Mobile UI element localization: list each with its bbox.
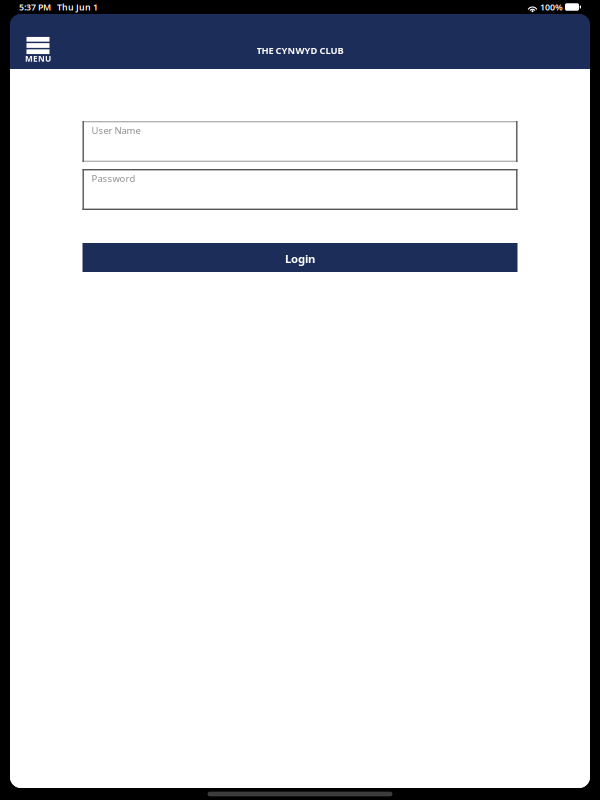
button[interactable]: User Name xyxy=(82,121,517,162)
staticText: MENU xyxy=(25,53,51,64)
staticText: Password xyxy=(91,172,135,185)
staticText: THE CYNWYD CLUB xyxy=(256,44,343,57)
staticText: 5:37 PM xyxy=(19,1,51,13)
button[interactable]: Password xyxy=(82,169,517,210)
button[interactable]: Login xyxy=(82,243,517,272)
staticText: 100% xyxy=(540,1,563,13)
staticText: User Name xyxy=(91,124,140,137)
staticText: Login xyxy=(285,251,315,266)
button[interactable]: Menu xyxy=(18,14,58,69)
staticText: Thu Jun 1 xyxy=(57,1,98,13)
